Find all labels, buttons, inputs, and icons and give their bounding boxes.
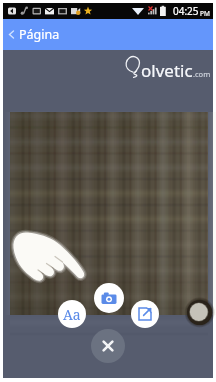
- staticText: PM: [200, 9, 210, 18]
- button[interactable]: Text style: [58, 300, 86, 328]
- button[interactable]: Camera: [94, 283, 124, 313]
- button[interactable]: Página: [3, 22, 70, 47]
- button[interactable]: Open: [131, 300, 159, 328]
- staticText: .com: [193, 69, 211, 79]
- button[interactable]: Close: [91, 329, 125, 363]
- button[interactable]: Color: [183, 296, 213, 326]
- staticText: 04:25: [173, 4, 199, 18]
- staticText: Aa: [63, 305, 81, 324]
- staticText: olvetic: [141, 59, 193, 82]
- staticText: Página: [19, 26, 60, 43]
